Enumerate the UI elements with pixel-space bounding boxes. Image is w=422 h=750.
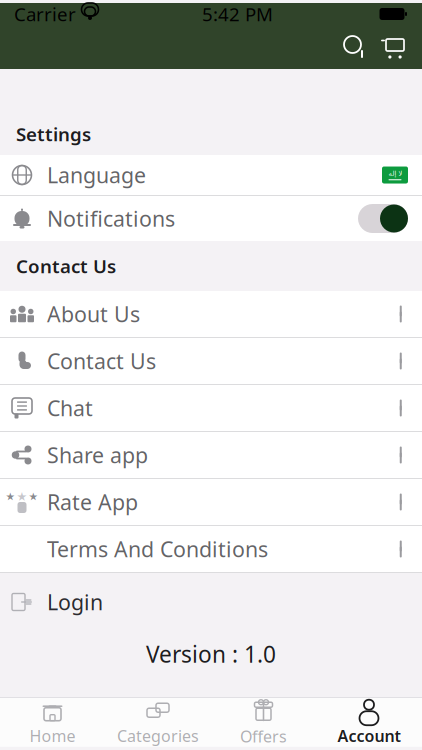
button[interactable]: Home <box>0 698 105 747</box>
staticText: Chat <box>47 394 93 422</box>
staticText: ★ <box>16 490 27 503</box>
staticText: Settings <box>16 122 91 146</box>
staticText: Offers <box>240 726 287 747</box>
staticText: Categories <box>117 725 199 746</box>
staticText: Home <box>29 725 75 746</box>
button[interactable]: Notifications <box>0 196 422 241</box>
button[interactable]: Cart <box>368 34 406 60</box>
staticText: Notifications <box>47 204 175 233</box>
button[interactable]: Chat <box>0 385 422 432</box>
staticText: ★ <box>5 490 15 502</box>
staticText: Account <box>337 725 400 746</box>
button[interactable]: Login <box>0 573 422 631</box>
staticText: ★ <box>28 490 38 502</box>
button[interactable]: Terms And Conditions <box>0 526 422 573</box>
staticText: لا إله <box>388 170 402 177</box>
button[interactable]: About Us <box>0 291 422 338</box>
staticText: Share app <box>47 441 148 469</box>
staticText: Contact Us <box>47 347 156 375</box>
button[interactable]: Account <box>316 698 422 747</box>
staticText: About Us <box>47 300 140 328</box>
button[interactable]: Language <box>0 155 422 196</box>
staticText: Terms And Conditions <box>47 535 268 563</box>
button[interactable]: Categories <box>105 698 211 747</box>
button[interactable]: ★ <box>0 479 422 526</box>
staticText: Version : 1.0 <box>146 639 276 669</box>
button[interactable]: Offers <box>211 698 316 747</box>
staticText: Carrier <box>14 2 76 26</box>
staticText: Rate App <box>47 488 138 516</box>
staticText: Login <box>47 588 103 616</box>
button[interactable]: Share app <box>0 432 422 479</box>
button[interactable]: Search <box>342 34 368 60</box>
staticText: 5:42 PM <box>202 2 273 26</box>
staticText: Contact Us <box>16 254 116 278</box>
button[interactable]: Contact Us <box>0 338 422 385</box>
staticText: Language <box>47 161 146 189</box>
